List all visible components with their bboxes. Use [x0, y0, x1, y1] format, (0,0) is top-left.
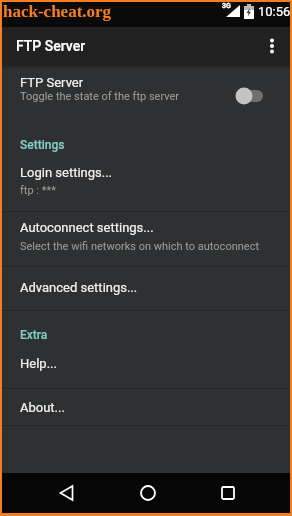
staticText: FTP Server — [20, 75, 84, 90]
button[interactable] — [2, 212, 290, 266]
staticText: Toggle the state of the ftp server — [20, 90, 180, 103]
staticText: Select the wifi networks on which to aut… — [20, 240, 259, 253]
button[interactable] — [133, 478, 163, 508]
staticText: About... — [20, 400, 65, 415]
staticText: Extra — [20, 328, 48, 342]
staticText: 10:56 — [258, 4, 291, 19]
button[interactable] — [52, 478, 82, 508]
staticText: 3G — [222, 2, 231, 10]
staticText: Help... — [20, 356, 57, 371]
button[interactable] — [2, 348, 290, 388]
button[interactable] — [2, 65, 290, 130]
button[interactable] — [2, 155, 290, 211]
button[interactable] — [260, 31, 290, 61]
staticText: Login settings... — [20, 165, 113, 180]
staticText: Settings — [20, 138, 65, 152]
button[interactable] — [2, 267, 290, 310]
staticText: FTP Server — [16, 38, 86, 54]
staticText: ftp : *** — [20, 184, 56, 197]
button[interactable] — [2, 389, 290, 425]
staticText: Autoconnect settings... — [20, 220, 154, 235]
staticText: Advanced settings... — [20, 280, 138, 295]
staticText: hack-cheat.org — [3, 2, 112, 21]
button[interactable] — [211, 478, 241, 508]
